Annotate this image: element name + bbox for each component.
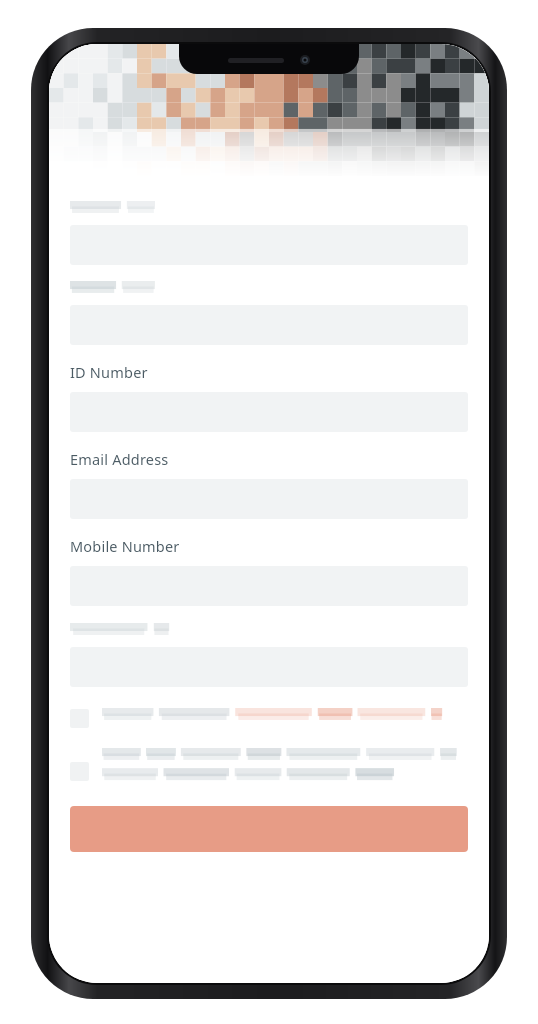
button[interactable]: Consent checkbox xyxy=(70,748,468,788)
staticText: ID Number xyxy=(70,362,148,382)
button[interactable]: Accept terms checkbox xyxy=(70,708,468,728)
staticText: Email Address xyxy=(70,449,169,469)
staticText: Mobile Number xyxy=(70,536,180,556)
